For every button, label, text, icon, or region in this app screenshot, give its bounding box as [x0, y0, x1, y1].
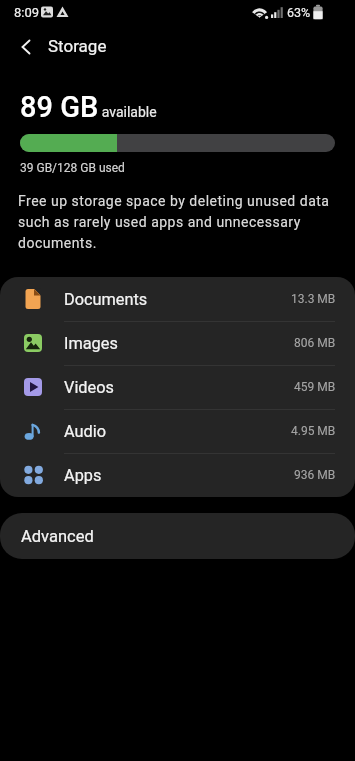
button[interactable]: Audio — [0, 409, 355, 453]
staticText: 89 GB available — [20, 90, 157, 124]
staticText: 39 GB/128 GB used — [20, 161, 125, 175]
button[interactable]: Advanced — [0, 513, 355, 559]
staticText: Audio — [64, 422, 106, 441]
button[interactable]: Apps — [0, 453, 355, 497]
staticText: 936 MB — [294, 468, 336, 482]
staticText: Advanced — [21, 527, 94, 546]
staticText: 806 MB — [294, 336, 336, 350]
staticText: Images — [64, 334, 118, 353]
staticText: 4.95 MB — [291, 424, 336, 438]
staticText: Videos — [64, 378, 114, 397]
button[interactable]: Documents — [0, 277, 355, 321]
button[interactable]: Images — [0, 321, 355, 365]
staticText: Free up storage space by deleting unused… — [18, 193, 330, 251]
staticText: 13.3 MB — [291, 292, 336, 306]
staticText: 8:09 — [14, 5, 40, 20]
staticText: 459 MB — [294, 380, 336, 394]
button[interactable]: Videos — [0, 365, 355, 409]
staticText: Documents — [64, 290, 148, 309]
staticText: Storage — [48, 36, 107, 56]
staticText: Apps — [64, 466, 102, 485]
staticText: 63% — [287, 5, 311, 20]
button[interactable] — [13, 33, 41, 61]
